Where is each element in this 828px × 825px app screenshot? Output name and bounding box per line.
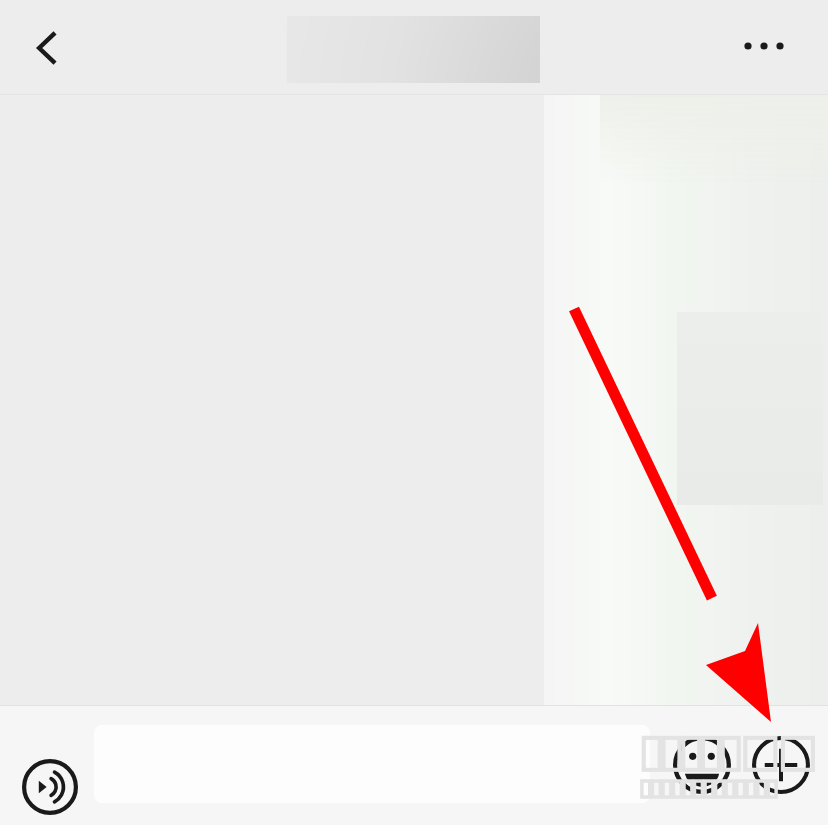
button[interactable]: More options bbox=[724, 6, 804, 86]
button[interactable]: Emoji bbox=[664, 727, 740, 803]
button[interactable]: Voice input bbox=[12, 749, 88, 825]
button[interactable]: Back bbox=[8, 8, 88, 88]
button[interactable]: More functions bbox=[743, 727, 819, 803]
